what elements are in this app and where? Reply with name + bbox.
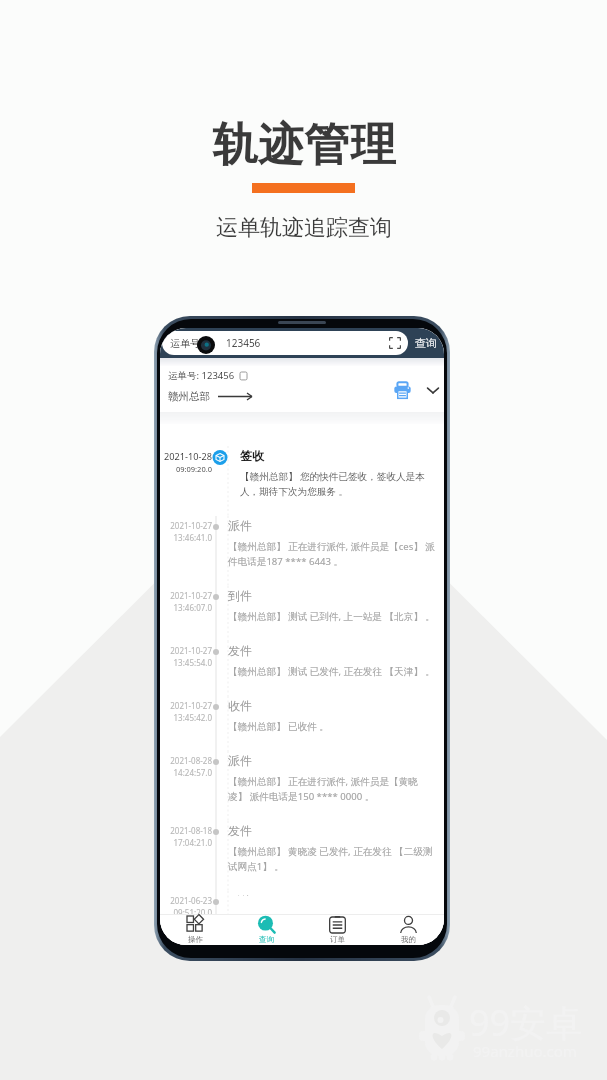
- staticText: 派件: [228, 518, 252, 533]
- staticText: 发件: [228, 823, 252, 838]
- staticText: 14:24:57.0: [173, 767, 212, 778]
- button[interactable]: 查询: [231, 915, 302, 945]
- staticText: 我的: [401, 935, 416, 944]
- staticText: 查询: [259, 935, 274, 944]
- button[interactable]: 2021-10-27: [160, 586, 444, 641]
- staticText: 派件: [228, 753, 252, 768]
- staticText: 发件: [228, 643, 252, 658]
- staticText: 2021-10-27: [170, 700, 212, 711]
- staticText: 【赣州总部】 正在进行派件, 派件员是【ces】 派件电话是187 **** 6…: [228, 540, 435, 568]
- staticText: 【赣州总部】 已收件 。: [228, 720, 329, 733]
- button[interactable]: Expand: [425, 382, 441, 398]
- staticText: 签收: [240, 448, 264, 463]
- staticText: 2021-10-28: [164, 450, 212, 463]
- button[interactable]: 2021-10-27: [160, 696, 444, 751]
- button[interactable]: 2021-08-18: [160, 821, 444, 891]
- staticText: 09:09:20.0: [175, 464, 212, 474]
- staticText: 2021-06-23: [170, 895, 212, 906]
- staticText: 2021-10-27: [170, 645, 212, 656]
- staticText: 2021-10-27: [170, 520, 212, 531]
- staticText: 13:46:07.0: [173, 602, 212, 613]
- staticText: 查询: [415, 336, 437, 350]
- staticText: 【赣州总部】 正在进行派件, 派件员是【黄晓凌】 派件电话是150 **** 0…: [228, 775, 435, 803]
- staticText: 13:46:41.0: [173, 532, 212, 543]
- staticText: 09:51:20.0: [173, 907, 212, 914]
- staticText: 2021-08-28: [170, 755, 212, 766]
- button[interactable]: 2021-06-23: [160, 891, 444, 914]
- staticText: 到件: [228, 893, 252, 896]
- staticText: 收件: [228, 698, 252, 713]
- button[interactable]: 2021-10-27: [160, 516, 444, 586]
- other: Scan barcode: [389, 337, 401, 349]
- staticText: 2021-10-27: [170, 590, 212, 601]
- button[interactable]: 我的: [373, 915, 444, 945]
- button[interactable]: 运单号: [162, 331, 408, 355]
- staticText: 【赣州总部】 黄晓凌 已发件, 正在发往 【二级测试网点1】 。: [228, 845, 435, 873]
- staticText: 运单轨迹追踪查询: [216, 214, 392, 242]
- button[interactable]: 2021-10-28: [160, 446, 444, 516]
- staticText: 17:04:21.0: [173, 837, 212, 848]
- button[interactable]: 2021-10-27: [160, 641, 444, 696]
- button[interactable]: 操作: [160, 915, 231, 945]
- button[interactable]: Print: [394, 382, 411, 399]
- staticText: 13:45:42.0: [173, 712, 212, 723]
- staticText: 【赣州总部】 测试 已发件, 正在发往 【天津】 。: [228, 665, 435, 678]
- staticText: 【赣州总部】 您的快件已签收，签收人是本人，期待下次为您服务 。: [240, 470, 435, 498]
- staticText: 到件: [228, 588, 252, 603]
- button[interactable]: 2021-08-28: [160, 751, 444, 821]
- staticText: 赣州总部: [168, 390, 210, 403]
- staticText: 轨迹管理: [212, 117, 396, 174]
- staticText: 【赣州总部】 测试 已到件, 上一站是 【北京】 。: [228, 610, 435, 623]
- button[interactable]: 查询: [408, 331, 444, 355]
- button[interactable]: Copy: [240, 371, 249, 380]
- staticText: 订单: [330, 935, 345, 944]
- staticText: 操作: [188, 935, 203, 944]
- button[interactable]: 订单: [302, 915, 373, 945]
- staticText: 运单号: 123456: [168, 369, 235, 382]
- staticText: 13:45:54.0: [173, 657, 212, 668]
- staticText: 运单号: [170, 337, 200, 350]
- staticText: 123456: [226, 336, 261, 350]
- staticText: 2021-08-18: [170, 825, 212, 836]
